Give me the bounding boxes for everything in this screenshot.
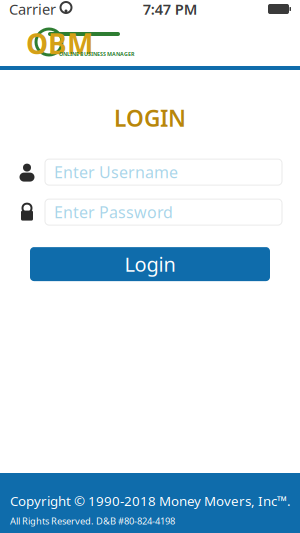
staticText: Enter Password xyxy=(54,201,173,223)
staticText: All Rights Reserved. D&B #80-824-4198 xyxy=(10,515,175,527)
button[interactable]: Login xyxy=(30,247,270,281)
staticText: 7:47 PM xyxy=(143,0,198,19)
staticText: OBM xyxy=(26,25,93,62)
staticText: Enter Username xyxy=(54,161,178,183)
staticText: Login xyxy=(124,251,175,277)
staticText: ONLINE BUSINESS MANAGER xyxy=(59,50,134,58)
staticText: Copyright © 1990-2018 Money Movers, Inc™… xyxy=(10,492,291,510)
staticText: Carrier xyxy=(9,0,56,19)
staticText: LOGIN xyxy=(114,103,186,133)
